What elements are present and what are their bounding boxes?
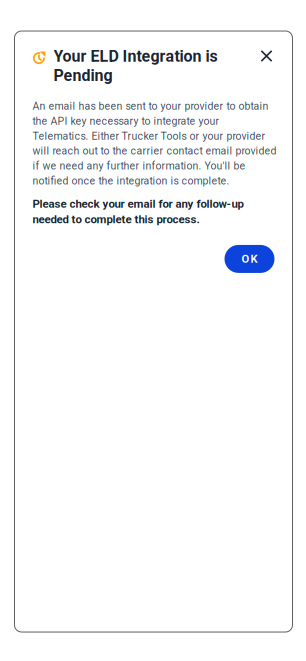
- button[interactable]: OK: [224, 245, 274, 273]
- staticText: An email has been sent to your provider …: [32, 100, 276, 187]
- button[interactable]: Close: [258, 48, 274, 64]
- staticText: Your ELD Integration is Pending: [53, 47, 217, 85]
- staticText: OK: [241, 252, 257, 265]
- staticText: Please check your email for any follow-u…: [32, 197, 243, 226]
